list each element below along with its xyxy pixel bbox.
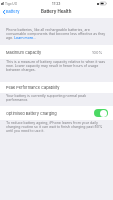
staticText: Optimised Battery Charging: [6, 111, 57, 116]
button[interactable]: Battery: [0, 8, 22, 15]
staticText: Battery Health: [41, 9, 72, 14]
button[interactable]: Peak Performance Capability: [0, 82, 113, 93]
staticText: Phone batteries, like all rechargeable b…: [6, 28, 107, 40]
button[interactable]: Optimised Battery Charging: [0, 106, 113, 120]
staticText: Your battery is currently supporting nor…: [6, 94, 107, 102]
staticText: 17:23: [52, 2, 61, 6]
staticText: Peak Performance Capability: [6, 85, 60, 90]
button[interactable]: Optimised Battery Charging: [94, 109, 108, 117]
staticText: 100%: [92, 50, 103, 55]
staticText: Tigo UG: [5, 2, 17, 6]
staticText: To reduce battery ageing, iPhone learns …: [6, 121, 107, 133]
staticText: Battery: [6, 9, 20, 14]
staticText: This is a measure of battery capacity re…: [6, 60, 107, 72]
button[interactable]: Maximum Capacity: [0, 45, 113, 59]
staticText: Maximum Capacity: [6, 50, 42, 55]
